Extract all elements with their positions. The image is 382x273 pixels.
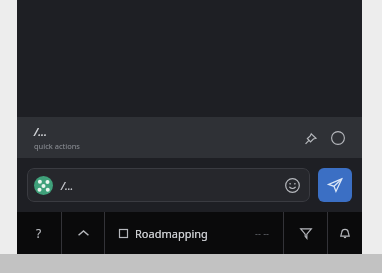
- button[interactable]: Help: [17, 212, 61, 254]
- staticText: ?: [36, 225, 42, 241]
- staticText: -- --: [255, 227, 269, 239]
- button[interactable]: Pin: [300, 128, 320, 148]
- staticText: quick actions: [34, 141, 80, 151]
- button[interactable]: /...: [17, 117, 362, 158]
- button[interactable]: More: [328, 128, 348, 148]
- staticText: Roadmapping: [135, 226, 208, 241]
- button[interactable]: Roadmapping: [105, 212, 283, 254]
- button[interactable]: Expand: [62, 212, 104, 254]
- button[interactable]: Notifications: [328, 212, 362, 254]
- staticText: /...: [34, 124, 47, 139]
- button[interactable]: /...: [27, 168, 310, 202]
- button[interactable]: Filter: [284, 212, 327, 254]
- button[interactable]: Send: [318, 168, 352, 202]
- staticText: /...: [61, 178, 74, 193]
- button[interactable]: Emoji: [281, 174, 303, 196]
